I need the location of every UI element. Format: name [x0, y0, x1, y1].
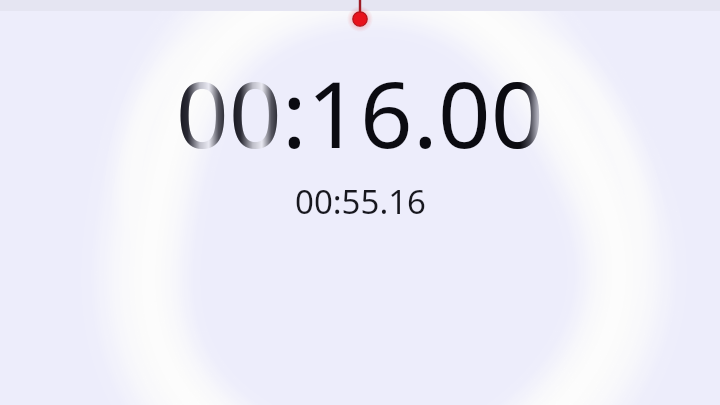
staticText: 1: [307, 50, 360, 175]
staticText: 6: [360, 50, 413, 175]
staticText: 0: [438, 50, 491, 175]
staticText: :: [282, 50, 307, 175]
staticText: 00:55.16: [295, 179, 426, 224]
staticText: 0: [229, 50, 282, 175]
staticText: 0: [176, 50, 229, 175]
button[interactable]: 0: [0, 0, 720, 405]
other: Timer marker: [0, 0, 720, 405]
staticText: .: [413, 50, 438, 175]
staticText: 0: [491, 50, 544, 175]
